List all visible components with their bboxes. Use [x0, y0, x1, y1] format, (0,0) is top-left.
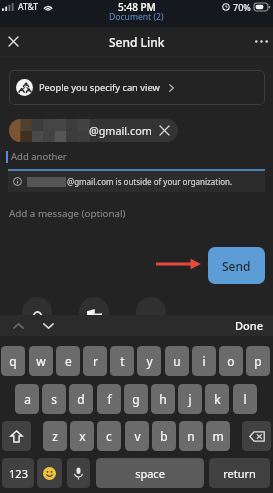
staticText: j [188, 391, 192, 407]
staticText: t [120, 353, 125, 369]
button[interactable]: Close [2, 27, 25, 56]
button[interactable]: Done [227, 315, 271, 336]
button[interactable]: b [152, 421, 176, 451]
button[interactable]: space [96, 458, 204, 488]
button[interactable]: e [56, 346, 80, 376]
button[interactable]: Voice input [67, 458, 90, 488]
button[interactable]: g [124, 384, 148, 414]
staticText: z [52, 428, 58, 444]
button[interactable]: c [97, 421, 121, 451]
button[interactable]: t [110, 346, 134, 376]
button[interactable]: Next field [36, 315, 60, 336]
button[interactable]: Share target [79, 297, 109, 327]
staticText: u [173, 353, 181, 369]
staticText: 70% [233, 1, 251, 13]
staticText: g [132, 391, 140, 407]
staticText: d [77, 391, 85, 407]
button[interactable]: Previous field [6, 315, 30, 336]
button[interactable]: a [15, 384, 39, 414]
staticText: Add a message (optional) [9, 207, 126, 220]
staticText: Send Link [109, 34, 165, 50]
staticText: Done [235, 318, 263, 333]
staticText: @gmail.com [89, 123, 152, 138]
staticText: w [36, 353, 46, 369]
button[interactable]: return [209, 458, 270, 488]
button[interactable]: y [137, 346, 161, 376]
button[interactable]: People you specify can view [9, 70, 265, 105]
staticText: Send [222, 258, 251, 274]
button[interactable]: p [246, 346, 270, 376]
button[interactable]: More options [249, 27, 273, 56]
button[interactable]: i [192, 346, 216, 376]
staticText: AT&T [18, 1, 39, 13]
button[interactable]: Share target [22, 297, 52, 327]
button[interactable]: r [83, 346, 107, 376]
staticText: o [227, 353, 235, 369]
button[interactable]: q [1, 346, 25, 376]
staticText: h [159, 391, 167, 407]
button[interactable]: Backspace [242, 421, 271, 451]
button[interactable]: Share target [136, 297, 166, 327]
staticText: c [106, 428, 112, 444]
staticText: i [202, 353, 206, 369]
button[interactable]: k [205, 384, 229, 414]
staticText: m [212, 428, 224, 444]
button[interactable]: j [178, 384, 202, 414]
staticText: l [243, 391, 247, 407]
staticText: Add another [11, 150, 67, 163]
staticText: People you specify can view [39, 81, 160, 94]
staticText: return [223, 466, 256, 481]
staticText: space [135, 466, 165, 481]
staticText: @gmail.com is outside of your organizati… [67, 176, 233, 187]
button[interactable]: Shift [2, 421, 31, 451]
button[interactable]: d [69, 384, 93, 414]
button[interactable]: f [97, 384, 121, 414]
button[interactable]: @gmail.com [9, 119, 178, 142]
button[interactable]: l [233, 384, 257, 414]
button[interactable]: w [29, 346, 53, 376]
button[interactable]: m [206, 421, 230, 451]
staticText: x [79, 428, 86, 444]
staticText: k [214, 391, 221, 407]
staticText: n [187, 428, 195, 444]
button[interactable]: u [165, 346, 189, 376]
staticText: y [146, 353, 153, 369]
staticText: v [134, 428, 141, 444]
staticText: r [93, 353, 98, 369]
button[interactable]: Send [208, 247, 265, 284]
staticText: 5:48 PM [118, 0, 156, 14]
button[interactable]: 123 [2, 458, 34, 488]
staticText: e [65, 353, 72, 369]
button[interactable]: Emoji [37, 458, 62, 488]
staticText: 123 [9, 466, 28, 481]
staticText: b [160, 428, 168, 444]
staticText: p [254, 353, 262, 369]
button[interactable]: z [43, 421, 67, 451]
button[interactable]: x [70, 421, 94, 451]
staticText: f [107, 391, 112, 407]
staticText: a [24, 391, 31, 407]
button[interactable]: n [179, 421, 203, 451]
staticText: s [51, 391, 57, 407]
staticText: q [9, 353, 17, 369]
button[interactable]: v [125, 421, 149, 451]
button[interactable]: o [219, 346, 243, 376]
button[interactable]: h [151, 384, 175, 414]
button[interactable]: s [42, 384, 66, 414]
staticText: Document (2) [109, 11, 164, 23]
